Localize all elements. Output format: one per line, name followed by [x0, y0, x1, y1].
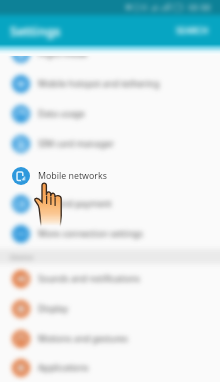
- button[interactable]: SIM card manager: [0, 129, 220, 159]
- button[interactable]: Applications: [0, 354, 220, 382]
- staticText: Mobile networks: [38, 168, 107, 180]
- staticText: NFC and payment: [38, 198, 112, 210]
- button[interactable]: More connection settings: [0, 219, 220, 249]
- staticText: Mobile networks: [38, 170, 107, 182]
- button[interactable]: Mobile networks: [0, 161, 220, 191]
- staticText: Display: [38, 303, 69, 315]
- button[interactable]: Mobile networks: [0, 159, 220, 189]
- staticText: Motions and gestures: [38, 333, 128, 345]
- staticText: Data usage: [38, 108, 85, 120]
- staticText: Mobile hotspot and tethering: [38, 78, 160, 90]
- staticText: Applications: [38, 362, 89, 374]
- button[interactable]: Flight mode: [0, 39, 220, 69]
- staticText: Device: [10, 252, 34, 262]
- staticText: More connection settings: [38, 228, 143, 240]
- staticText: SEARCH: [176, 25, 209, 37]
- button[interactable]: Motions and gestures: [0, 324, 220, 354]
- other: Tap pointer: [0, 0, 220, 382]
- staticText: Sounds and notifications: [38, 273, 141, 285]
- button[interactable]: SEARCH: [165, 25, 220, 37]
- button[interactable]: NFC and payment: [0, 189, 220, 219]
- staticText: SIM card manager: [38, 138, 114, 150]
- staticText: Settings: [10, 22, 61, 40]
- staticText: Flight mode: [38, 48, 88, 60]
- button[interactable]: Display: [0, 294, 220, 324]
- button[interactable]: Mobile hotspot and tethering: [0, 69, 220, 99]
- button[interactable]: Sounds and notifications: [0, 264, 220, 294]
- button[interactable]: Data usage: [0, 99, 220, 129]
